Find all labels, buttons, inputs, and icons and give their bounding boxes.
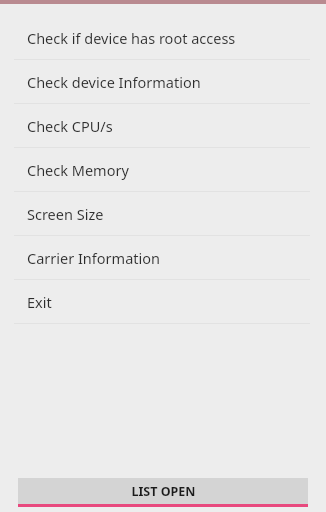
staticText: Check device Information <box>27 72 201 92</box>
button[interactable]: Screen Size <box>0 192 326 236</box>
staticText: Screen Size <box>27 204 104 224</box>
staticText: Check if device has root access <box>27 28 236 48</box>
button[interactable]: Check if device has root access <box>0 16 326 60</box>
button[interactable]: Check Memory <box>0 148 326 192</box>
staticText: Exit <box>27 292 52 312</box>
button[interactable]: Check CPU/s <box>0 104 326 148</box>
staticText: Check CPU/s <box>27 116 113 136</box>
staticText: LIST OPEN <box>131 483 196 500</box>
staticText: Check Memory <box>27 160 129 180</box>
staticText: Carrier Information <box>27 248 160 268</box>
button[interactable]: LIST OPEN <box>18 478 308 507</box>
button[interactable]: Exit <box>0 280 326 324</box>
button[interactable]: Carrier Information <box>0 236 326 280</box>
button[interactable]: Check device Information <box>0 60 326 104</box>
